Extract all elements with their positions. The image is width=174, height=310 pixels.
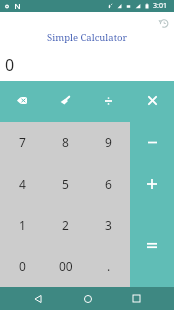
staticText: 4	[19, 176, 26, 192]
staticText: 7	[19, 134, 26, 150]
button[interactable]: 5	[44, 164, 87, 205]
staticText: 8	[62, 134, 69, 150]
button[interactable]: Multiply	[130, 81, 174, 122]
staticText: 3	[105, 217, 112, 233]
button[interactable]: 4	[0, 164, 44, 205]
button[interactable]: Home	[76, 287, 99, 310]
button[interactable]: 2	[44, 205, 87, 246]
staticText: 2	[62, 217, 69, 233]
button[interactable]: 0	[0, 246, 44, 287]
button[interactable]: Divide	[86, 81, 130, 122]
staticText: 9	[105, 134, 112, 150]
button[interactable]: 1	[0, 205, 44, 246]
button[interactable]: Back	[26, 287, 49, 310]
staticText: 00	[59, 258, 73, 274]
button[interactable]: .	[87, 246, 130, 287]
button[interactable]: History	[157, 17, 169, 29]
button[interactable]: 7	[0, 122, 44, 164]
staticText: 0	[19, 258, 26, 274]
staticText: 6	[105, 176, 112, 192]
button[interactable]: 00	[44, 246, 87, 287]
button[interactable]: 8	[44, 122, 87, 164]
staticText: 5	[62, 176, 69, 192]
button[interactable]: 3	[87, 205, 130, 246]
button[interactable]: Backspace	[0, 81, 43, 122]
staticText: 3:01	[153, 1, 167, 11]
button[interactable]: 6	[87, 164, 130, 205]
staticText: 1	[19, 217, 26, 233]
button[interactable]: Equals	[130, 204, 174, 287]
button[interactable]: Clear	[43, 81, 86, 122]
button[interactable]: Minus	[130, 122, 174, 163]
staticText: .	[107, 258, 111, 274]
staticText: Simple Calculator	[47, 31, 127, 44]
button[interactable]: Plus	[130, 163, 174, 204]
staticText: 0	[5, 54, 15, 76]
button[interactable]: 9	[87, 122, 130, 164]
button[interactable]: Recents	[125, 287, 148, 310]
